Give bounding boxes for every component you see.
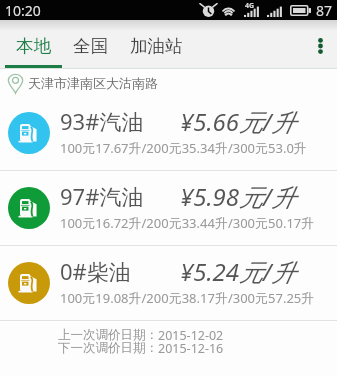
- button[interactable]: 加油站: [119, 20, 194, 69]
- staticText: 87: [316, 1, 333, 20]
- staticText: 上一次调价日期：: [58, 327, 158, 343]
- staticText: 100元17.67升/200元35.34升/300元53.0升: [60, 139, 307, 157]
- staticText: ¥5.98元/升: [180, 180, 296, 213]
- staticText: 2015-12-02: [158, 327, 224, 344]
- staticText: 下一次调价日期：: [58, 340, 158, 356]
- staticText: 4G: [245, 1, 255, 11]
- staticText: 93#汽油: [60, 106, 144, 136]
- staticText: 100元19.08升/200元38.17升/300元57.25升: [60, 289, 315, 307]
- staticText: 2015-12-16: [158, 340, 224, 357]
- staticText: 0#柴油: [60, 256, 131, 286]
- button[interactable]: 97#汽油: [0, 171, 337, 245]
- staticText: 97#汽油: [60, 181, 144, 211]
- staticText: 10:20: [5, 1, 41, 20]
- button[interactable]: 本地: [5, 20, 62, 69]
- button[interactable]: 93#汽油: [0, 96, 337, 170]
- staticText: ¥5.66元/升: [180, 105, 296, 138]
- staticText: 加油站: [130, 35, 183, 57]
- button[interactable]: 0#柴油: [0, 246, 337, 320]
- staticText: 100元16.72升/200元33.44升/300元50.17升: [60, 214, 315, 232]
- staticText: 天津市津南区大沽南路: [28, 75, 158, 91]
- button[interactable]: More options: [303, 20, 337, 69]
- staticText: ¥5.24元/升: [180, 255, 296, 288]
- staticText: 全国: [73, 35, 108, 57]
- staticText: 本地: [16, 35, 51, 57]
- button[interactable]: 全国: [62, 20, 119, 69]
